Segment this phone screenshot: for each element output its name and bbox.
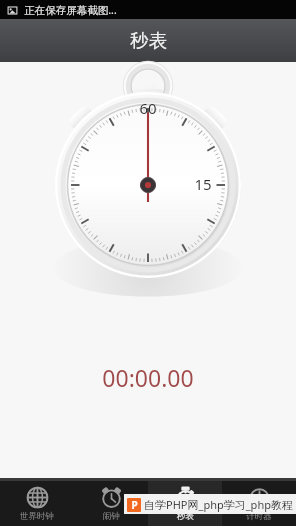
staticText: P [131, 498, 138, 512]
staticText: 秒表 [130, 29, 167, 52]
button[interactable]: 秒表 [148, 481, 222, 526]
staticText: 15 [194, 174, 212, 194]
staticText: 自学PHP网_php学习_php教程 [144, 497, 293, 512]
staticText: 60 [139, 98, 157, 118]
staticText: 00:00.00 [102, 362, 194, 393]
button[interactable]: 闹钟 [74, 481, 148, 526]
staticText: 计时器 [246, 511, 272, 522]
staticText: 闹钟 [103, 511, 120, 522]
button[interactable]: 世界时钟 [0, 481, 74, 526]
staticText: 世界时钟 [20, 511, 54, 522]
staticText: 正在保存屏幕截图... [24, 3, 117, 17]
button[interactable]: 计时器 [222, 481, 296, 526]
staticText: 秒表 [177, 511, 194, 522]
